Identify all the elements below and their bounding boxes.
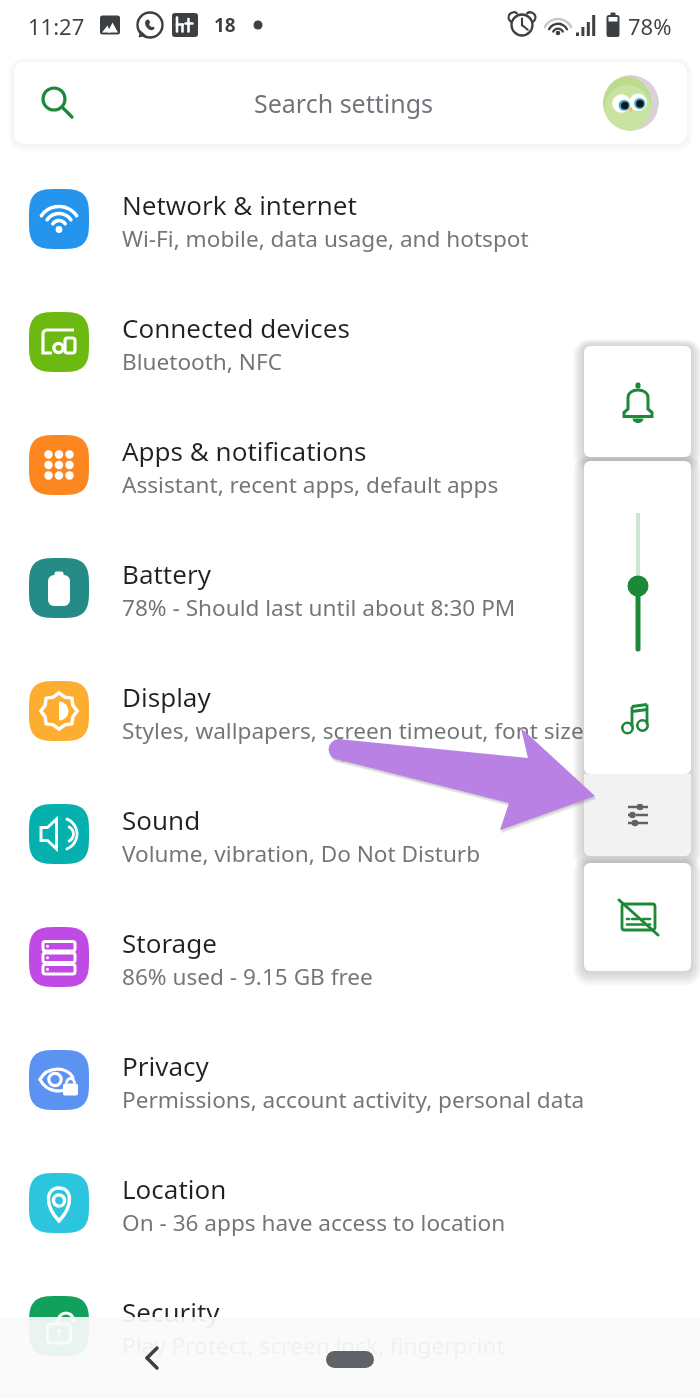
- staticText: Privacy: [122, 1048, 209, 1083]
- staticText: Security: [122, 1294, 220, 1329]
- staticText: Search settings: [254, 86, 434, 120]
- staticText: Apps & notifications: [122, 433, 367, 468]
- staticText: Display: [122, 679, 211, 714]
- button[interactable]: Security: [0, 1296, 700, 1399]
- button[interactable]: Live caption: [584, 863, 691, 971]
- staticText: Battery: [122, 556, 211, 591]
- staticText: Storage: [122, 925, 217, 960]
- staticText: Connected devices: [122, 310, 350, 345]
- button[interactable]: Account: [603, 75, 659, 131]
- staticText: Volume, vibration, Do Not Disturb: [122, 838, 481, 869]
- staticText: Assistant, recent apps, default apps: [122, 469, 499, 500]
- staticText: Network & internet: [122, 187, 357, 222]
- staticText: Permissions, account activity, personal …: [122, 1084, 585, 1115]
- button[interactable]: Network & internet: [0, 189, 700, 312]
- button[interactable]: Display: [0, 681, 700, 804]
- staticText: 78% - Should last until about 8:30 PM: [122, 592, 516, 623]
- button[interactable]: Search settings: [14, 62, 687, 144]
- staticText: 86% used - 9.15 GB free: [122, 961, 373, 992]
- staticText: Styles, wallpapers, screen timeout, font…: [122, 715, 584, 746]
- button[interactable]: Apps & notifications: [0, 435, 700, 558]
- staticText: Bluetooth, NFC: [122, 346, 282, 377]
- button[interactable]: Storage: [0, 927, 700, 1050]
- staticText: 18: [214, 12, 236, 38]
- button[interactable]: Home: [326, 1351, 374, 1368]
- staticText: On - 36 apps have access to location: [122, 1207, 506, 1238]
- staticText: Sound: [122, 802, 201, 837]
- button[interactable]: Sound settings: [584, 774, 691, 856]
- button[interactable]: Location: [0, 1173, 700, 1296]
- button[interactable]: Sound: [0, 804, 700, 927]
- staticText: Play Protect, screen lock, fingerprint: [122, 1330, 505, 1361]
- button[interactable]: Media volume: [584, 461, 691, 774]
- staticText: 11:27: [28, 11, 85, 41]
- button[interactable]: Connected devices: [0, 312, 700, 435]
- button[interactable]: Privacy: [0, 1050, 700, 1173]
- button[interactable]: Battery: [0, 558, 700, 681]
- button[interactable]: Back: [120, 1326, 184, 1390]
- staticText: Wi-Fi, mobile, data usage, and hotspot: [122, 223, 529, 254]
- staticText: Location: [122, 1171, 227, 1206]
- staticText: 78%: [628, 11, 672, 41]
- button[interactable]: Ring mode: [584, 346, 691, 457]
